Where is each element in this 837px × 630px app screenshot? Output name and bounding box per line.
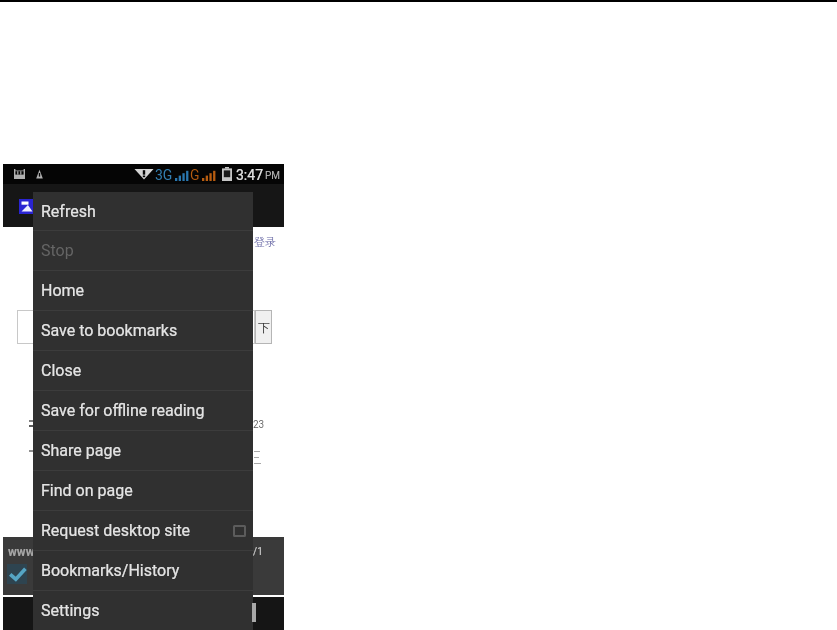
staticText: Home xyxy=(41,281,85,300)
button[interactable]: Bookmarks/History xyxy=(33,551,253,590)
button[interactable]: Close xyxy=(33,351,253,390)
staticText: Close xyxy=(41,361,82,380)
staticText: 3:47 xyxy=(236,167,263,183)
staticText: Bookmarks/History xyxy=(41,561,180,580)
staticText: 23 xyxy=(253,419,265,431)
button[interactable]: Find on page xyxy=(33,471,253,510)
button[interactable]: Verified site xyxy=(7,564,27,584)
button[interactable]: Stop xyxy=(33,231,253,270)
staticText: Save to bookmarks xyxy=(41,321,178,340)
button[interactable]: Home xyxy=(33,271,253,310)
staticText: /1 xyxy=(253,546,263,558)
staticText: Request desktop site xyxy=(41,521,191,540)
button[interactable]: Request desktop site xyxy=(33,511,253,550)
button[interactable]: Settings xyxy=(33,591,253,630)
staticText: Stop xyxy=(41,241,74,260)
staticText: G xyxy=(190,167,200,183)
staticText: www xyxy=(8,545,35,559)
button[interactable]: Page icon xyxy=(19,199,35,214)
staticText: Share page xyxy=(41,441,121,460)
staticText: Find on page xyxy=(41,481,133,500)
button[interactable]: Save for offline reading xyxy=(33,391,253,430)
button[interactable]: Save to bookmarks xyxy=(33,311,253,350)
staticText: Save for offline reading xyxy=(41,401,205,420)
staticText: 登录 xyxy=(254,235,276,249)
button[interactable]: Share page xyxy=(33,431,253,470)
button[interactable]: Refresh xyxy=(33,192,253,230)
button[interactable]: Search xyxy=(255,310,272,344)
staticText: 下 xyxy=(258,320,270,335)
staticText: 3G xyxy=(155,167,173,183)
staticText: PM xyxy=(265,170,281,182)
staticText: Settings xyxy=(41,601,100,620)
staticText: Refresh xyxy=(41,202,96,221)
